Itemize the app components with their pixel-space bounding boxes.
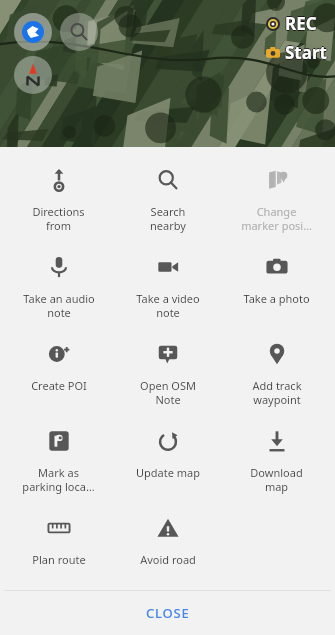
staticText: Mark as parking loca… — [22, 465, 95, 494]
staticText: Start — [286, 41, 328, 64]
staticText: Start — [285, 40, 327, 63]
staticText: Search nearby — [150, 204, 186, 233]
button[interactable]: Take an audio note — [4, 242, 113, 329]
button[interactable]: Change marker posi… — [222, 155, 331, 242]
staticText: REC — [286, 12, 318, 35]
button[interactable]: Plan route — [4, 503, 113, 590]
staticText: Change marker posi… — [241, 204, 312, 233]
staticText: Directions from — [32, 204, 85, 233]
button[interactable]: Add track waypoint — [222, 329, 331, 416]
staticText: REC — [285, 11, 317, 34]
button[interactable]: Configure map — [14, 13, 52, 51]
button[interactable]: Take a video note — [113, 242, 222, 329]
button[interactable]: Update map — [113, 416, 222, 503]
staticText: Take a video note — [136, 291, 200, 320]
button[interactable]: Create POI — [4, 329, 113, 416]
button[interactable]: Compass — [14, 56, 52, 94]
button[interactable]: CLOSE — [4, 591, 331, 635]
staticText: Start — [285, 41, 327, 64]
staticText: Avoid road — [140, 552, 196, 567]
button[interactable]: Open OSM Note — [113, 329, 222, 416]
staticText: Create POI — [31, 378, 87, 393]
staticText: Download map — [250, 465, 303, 494]
staticText: Add track waypoint — [252, 378, 302, 407]
button[interactable]: Mark as parking loca… — [4, 416, 113, 503]
staticText: Start — [285, 42, 327, 65]
button[interactable]: Recording — [266, 12, 317, 35]
staticText: Take a photo — [243, 291, 310, 306]
button[interactable]: Take a photo — [222, 242, 331, 329]
staticText: CLOSE — [146, 604, 190, 622]
button[interactable]: Search — [60, 13, 98, 51]
staticText: Start — [284, 41, 326, 64]
staticText: REC — [285, 12, 317, 35]
button[interactable]: Avoid road — [113, 503, 222, 590]
staticText: REC — [285, 13, 317, 36]
button[interactable]: Search nearby — [113, 155, 222, 242]
staticText: Update map — [136, 465, 200, 480]
button[interactable]: Download map — [222, 416, 331, 503]
staticText: Plan route — [32, 552, 86, 567]
button[interactable]: Directions from — [4, 155, 113, 242]
staticText: Take an audio note — [23, 291, 95, 320]
button[interactable]: Start recording — [266, 41, 327, 64]
staticText: REC — [284, 12, 316, 35]
staticText: Open OSM Note — [140, 378, 196, 407]
